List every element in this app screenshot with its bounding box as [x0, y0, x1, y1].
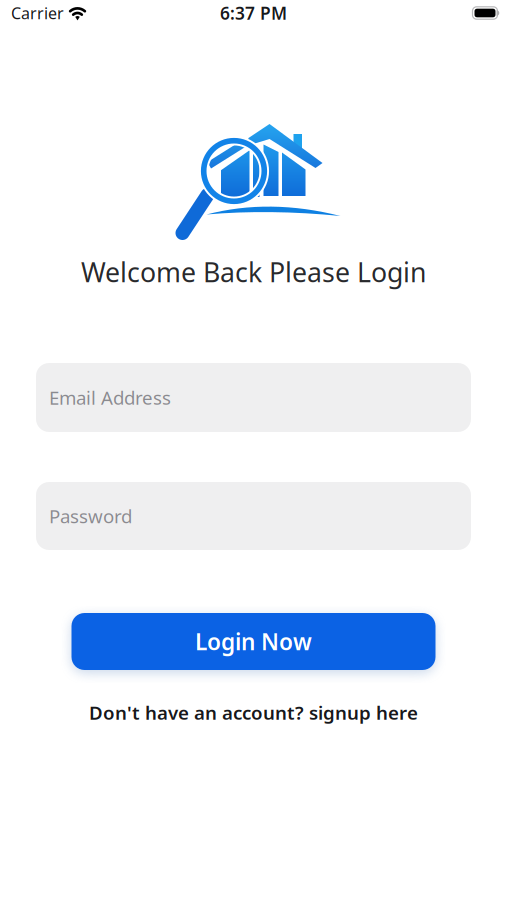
button[interactable]: Password	[36, 482, 471, 550]
staticText: Password	[49, 504, 132, 528]
staticText: Welcome Back Please Login	[81, 254, 426, 290]
staticText: 6:37 PM	[220, 1, 287, 24]
staticText: Carrier	[11, 2, 64, 24]
button[interactable]: Login Now	[71, 613, 435, 670]
staticText: Login Now	[195, 626, 312, 656]
staticText: Email Address	[49, 385, 171, 410]
button[interactable]: Email Address	[36, 363, 471, 432]
button[interactable]: Don't have an account? signup here	[89, 700, 418, 725]
staticText: Don't have an account? signup here	[89, 700, 418, 725]
